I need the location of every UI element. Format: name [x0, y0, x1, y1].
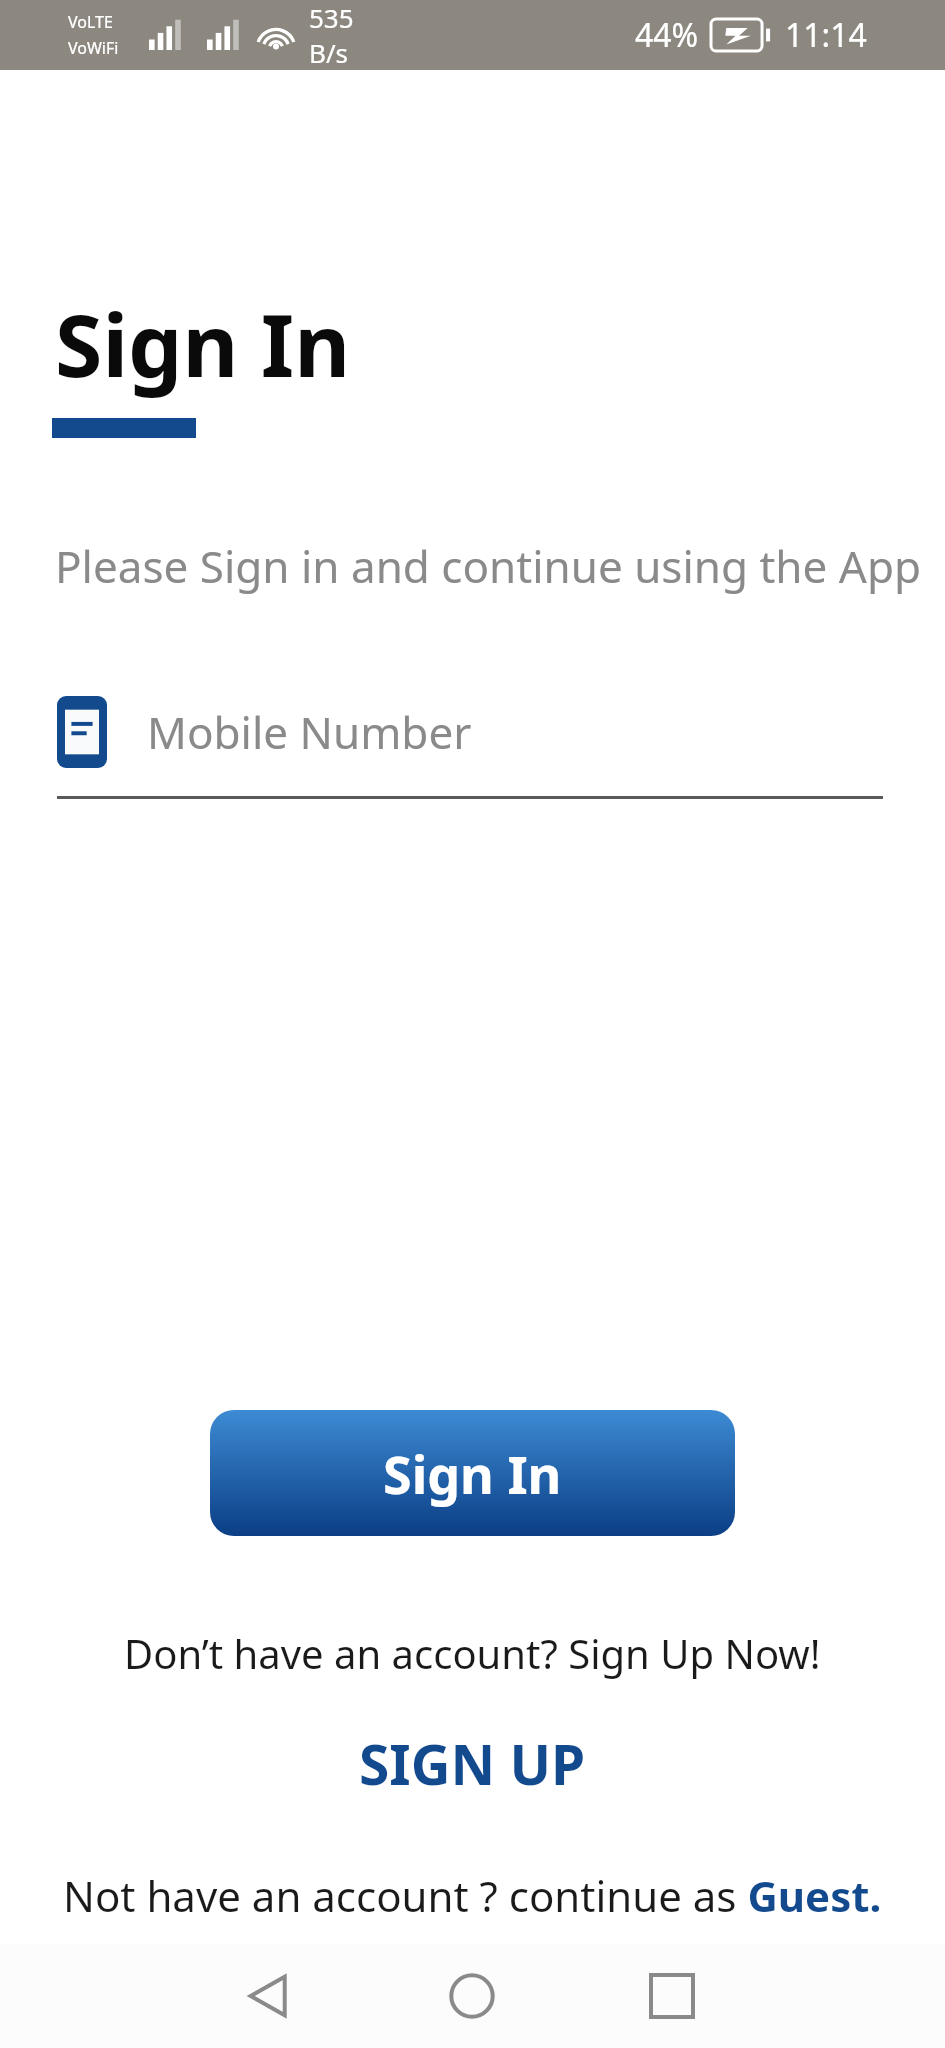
button[interactable]: Back [220, 1946, 320, 2046]
staticText: 535 [309, 0, 354, 35]
button[interactable]: SIGN UP [347, 1722, 598, 1805]
staticText: Mobile Number [147, 702, 472, 762]
staticText: Sign In [55, 285, 351, 402]
staticText: Sign In [383, 1438, 562, 1509]
staticText: 11:14 [785, 13, 867, 57]
staticText: Don’t have an account? Sign Up Now! [124, 1626, 821, 1680]
staticText: Please Sign in and continue using the Ap… [55, 536, 922, 596]
button[interactable]: Recents [622, 1946, 722, 2046]
staticText: 44% [635, 13, 699, 57]
staticText: SIGN UP [359, 1726, 586, 1801]
staticText: VoLTE [68, 11, 113, 33]
staticText: VoWiFi [68, 37, 119, 59]
staticText: Not have an account ? continue as Guest. [63, 1867, 882, 1924]
button[interactable]: Not have an account ? continue as Guest. [63, 1867, 882, 1924]
staticText: B/s [309, 35, 349, 70]
button[interactable]: Home [422, 1946, 522, 2046]
button[interactable]: Sign In [210, 1410, 735, 1536]
